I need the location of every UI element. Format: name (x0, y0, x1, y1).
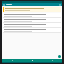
button[interactable] (3, 7, 61, 12)
button[interactable] (3, 13, 61, 17)
button[interactable]: Tab 1 (2, 59, 22, 62)
button[interactable]: Menu (3, 4, 5, 6)
button[interactable]: Tab 3 (42, 59, 62, 62)
button[interactable] (3, 23, 61, 27)
button[interactable]: Tab 2 (22, 59, 42, 62)
button[interactable] (3, 18, 61, 22)
button[interactable]: Add (58, 55, 61, 58)
button[interactable] (3, 28, 61, 32)
